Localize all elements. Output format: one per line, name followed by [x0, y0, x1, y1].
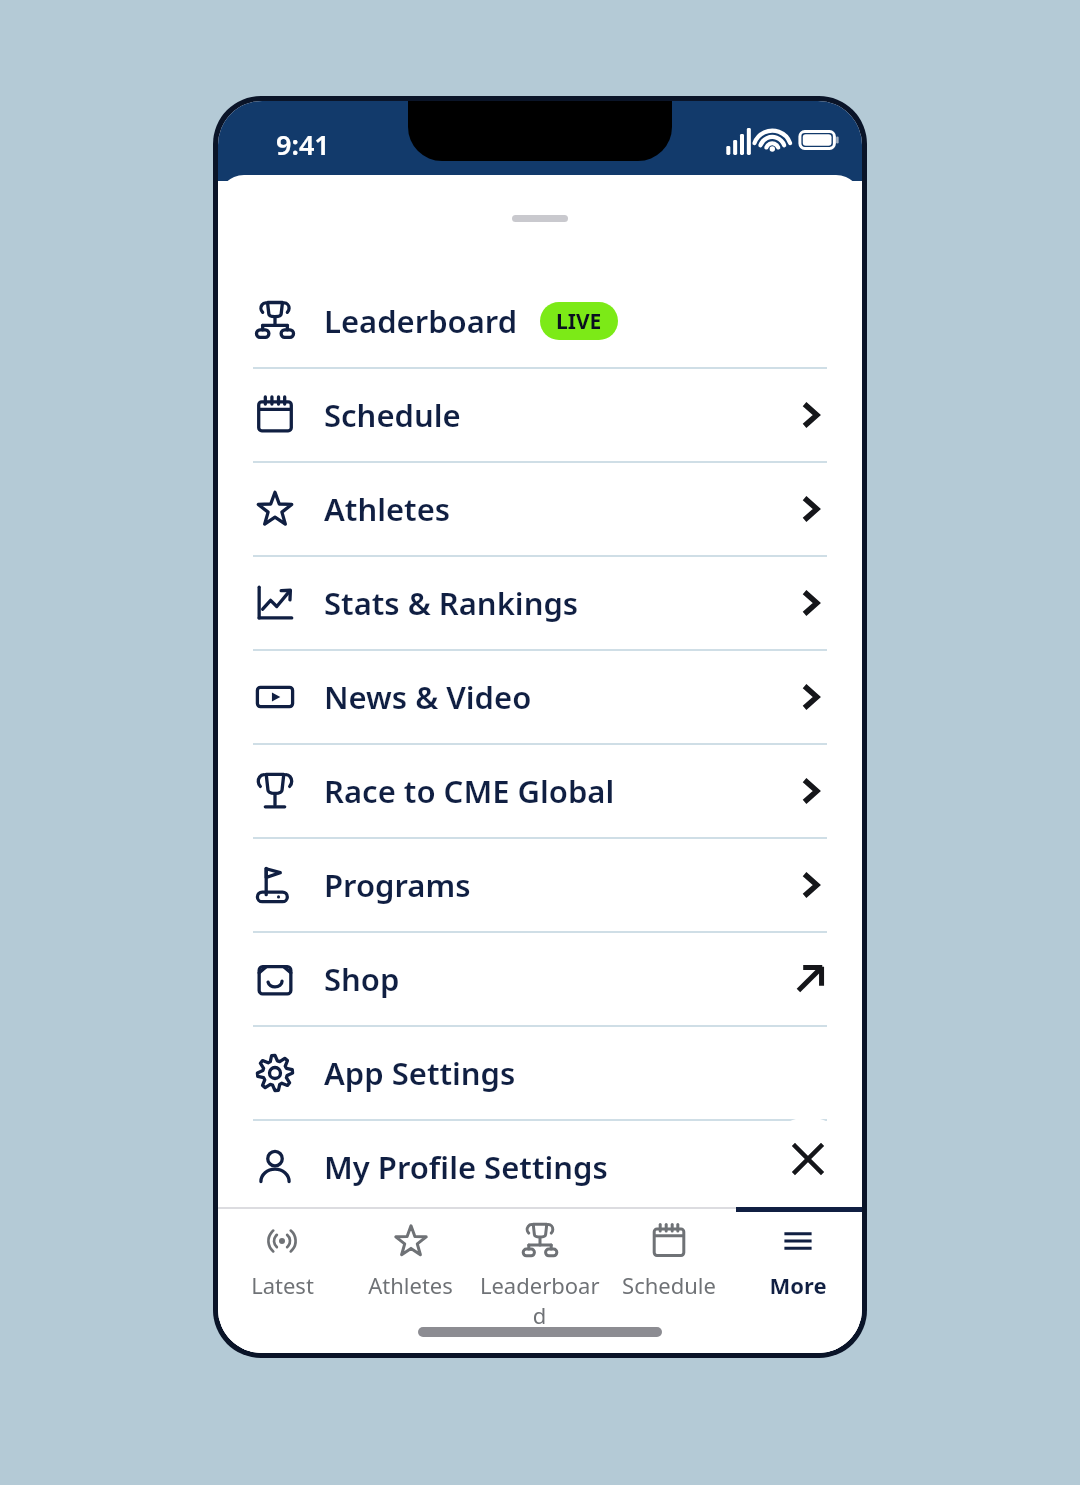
staticText: Programs — [324, 864, 471, 906]
button[interactable]: Schedule — [604, 1221, 733, 1353]
staticText: More — [769, 1270, 827, 1300]
staticText: Athletes — [368, 1270, 453, 1300]
button[interactable]: Athletes — [346, 1221, 475, 1353]
staticText: Leaderboard — [475, 1270, 604, 1330]
button[interactable]: News & Video — [218, 651, 862, 743]
staticText: Schedule — [324, 394, 461, 436]
staticText: Latest — [251, 1270, 314, 1300]
staticText: News & Video — [324, 676, 532, 718]
button[interactable]: Leaderboard — [475, 1221, 604, 1353]
staticText: App Settings — [324, 1052, 516, 1094]
staticText: LIVE — [556, 307, 602, 336]
button[interactable]: Leaderboard — [218, 275, 862, 367]
button[interactable]: App Settings — [218, 1027, 862, 1119]
button[interactable]: Shop — [218, 933, 862, 1025]
staticText: 9:41 — [276, 126, 330, 163]
button[interactable]: Programs — [218, 839, 862, 931]
staticText: Schedule — [622, 1270, 716, 1300]
button[interactable]: Latest — [218, 1221, 346, 1353]
staticText: Shop — [324, 958, 400, 1000]
staticText: Leaderboard — [324, 300, 518, 342]
button[interactable]: Stats & Rankings — [218, 557, 862, 649]
button[interactable]: Close — [766, 1117, 850, 1201]
button[interactable]: Athletes — [218, 463, 862, 555]
staticText: Race to CME Global — [324, 770, 615, 812]
staticText: Athletes — [324, 488, 451, 530]
staticText: My Profile Settings — [324, 1146, 608, 1188]
button[interactable]: Schedule — [218, 369, 862, 461]
button[interactable]: Race to CME Global — [218, 745, 862, 837]
staticText: Stats & Rankings — [324, 582, 579, 624]
button[interactable]: My Profile Settings — [218, 1121, 862, 1213]
button[interactable]: More — [733, 1221, 862, 1353]
